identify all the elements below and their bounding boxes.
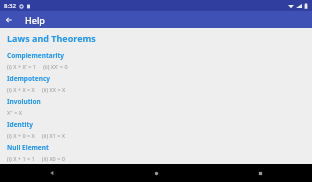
button[interactable]: Null Element (5, 139, 307, 162)
staticText: (i) X + 1 = 1 (ii) X0 = 0 (7, 155, 65, 162)
staticText: X'' = X (7, 109, 22, 116)
button[interactable]: Involution (5, 93, 307, 116)
button[interactable]: Navigate up (0, 11, 17, 28)
staticText: Involution (7, 97, 41, 106)
button[interactable]: Recent apps (208, 164, 312, 182)
staticText: Identity (7, 120, 34, 129)
staticText: (i) X + X = X (ii) XX = X (7, 86, 66, 93)
staticText: (i) X + 0 = X (ii) X1 = X (7, 132, 66, 139)
button[interactable]: Idempotency (5, 70, 307, 93)
staticText: Laws and Theorems (7, 32, 96, 44)
staticText: (i) X + X' = 1 (ii) XX' = 0 (7, 63, 68, 70)
button[interactable]: Complementarity (5, 47, 307, 70)
staticText: Help (25, 14, 45, 26)
button[interactable]: Back (0, 164, 104, 182)
button[interactable]: Identity (5, 116, 307, 139)
button[interactable]: Home (104, 164, 208, 182)
staticText: 8:32 (4, 2, 16, 10)
staticText: Complementarity (7, 51, 65, 60)
staticText: Null Element (7, 143, 49, 152)
staticText: Idempotency (7, 74, 51, 83)
